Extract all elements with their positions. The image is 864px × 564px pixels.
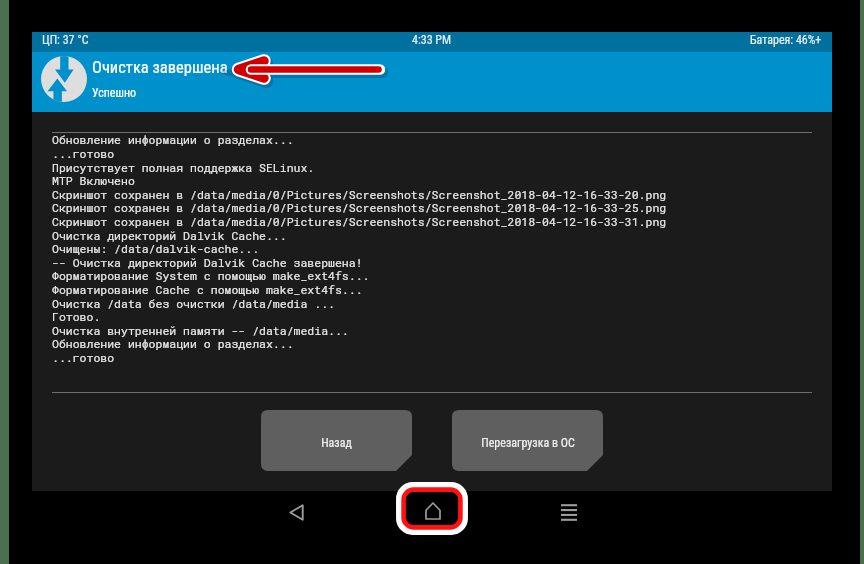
staticText: Батарея: 46%+ — [750, 33, 822, 47]
button[interactable]: Home — [398, 484, 466, 533]
staticText: Форматирование Cache с помощью make_ext4… — [52, 282, 363, 297]
staticText: ЦП: 37 °C — [42, 33, 89, 47]
button[interactable]: Перезагрузка в ОС — [452, 410, 603, 471]
staticText: Скриншот сохранен в /data/media/0/Pictur… — [52, 200, 667, 215]
staticText: Успешно — [92, 86, 137, 100]
staticText: Очистка директорий Dalvik Cache... — [52, 228, 287, 243]
staticText: Очистка /data без очистки /data/media ..… — [52, 296, 335, 311]
button[interactable]: Recent apps — [534, 491, 604, 533]
staticText: Обновление информации о разделах... — [52, 336, 294, 351]
staticText: Очищены: /data/dalvik-cache... — [52, 241, 260, 256]
staticText: -- Очистка директорий Dalvik Cache завер… — [52, 255, 363, 270]
staticText: Скриншот сохранен в /data/media/0/Pictur… — [52, 214, 667, 229]
staticText: Назад — [321, 436, 352, 450]
staticText: Очистка внутренней памяти -- /data/media… — [52, 323, 349, 338]
staticText: Присутствует полная поддержка SELinux. — [52, 160, 315, 175]
staticText: Очистка завершена — [92, 58, 228, 77]
staticText: Готово. — [52, 309, 101, 324]
button[interactable]: Back — [261, 491, 331, 533]
staticText: Обновление информации о разделах... — [52, 132, 294, 147]
staticText: 4:33 PM — [412, 33, 452, 47]
button[interactable]: Назад — [261, 410, 412, 471]
staticText: MTP Включено — [52, 173, 135, 188]
staticText: Перезагрузка в ОС — [481, 436, 575, 450]
staticText: ...готово — [52, 146, 115, 161]
staticText: Скриншот сохранен в /data/media/0/Pictur… — [52, 187, 667, 202]
staticText: Форматирование System с помощью make_ext… — [52, 268, 370, 283]
staticText: ...готово — [52, 350, 115, 365]
